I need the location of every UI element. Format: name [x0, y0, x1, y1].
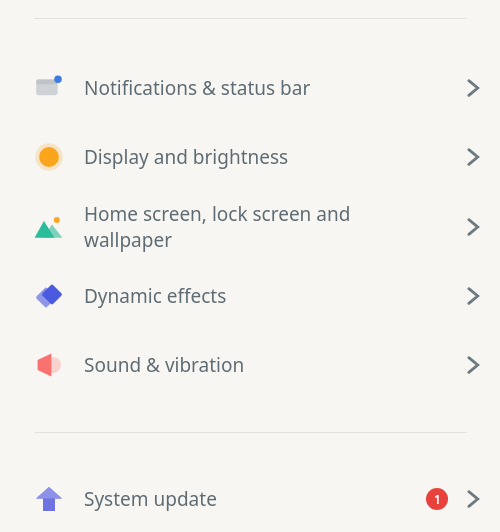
staticText: Sound & vibration: [84, 352, 245, 378]
other: Open System update: [460, 486, 486, 512]
other: Open Display and brightness: [460, 144, 486, 170]
staticText: Dynamic effects: [84, 283, 227, 309]
button[interactable]: Sound & vibration: [0, 330, 500, 400]
button[interactable]: Display and brightness: [0, 122, 500, 192]
staticText: Home screen, lock screen and wallpaper: [84, 201, 351, 253]
staticText: 1: [434, 491, 441, 507]
button[interactable]: Notifications & status bar: [0, 54, 500, 122]
staticText: System update: [84, 486, 217, 512]
staticText: Display and brightness: [84, 144, 289, 170]
button[interactable]: Home screen, lock screen and wallpaper: [0, 192, 500, 262]
other: Open Sound & vibration: [460, 352, 486, 378]
button[interactable]: System update: [0, 465, 500, 532]
other: Open Notifications & status bar: [460, 75, 486, 101]
staticText: Notifications & status bar: [84, 75, 311, 101]
other: Open Dynamic effects: [460, 283, 486, 309]
other: Open Home screen, lock screen and wallpa…: [460, 214, 486, 240]
button[interactable]: Dynamic effects: [0, 262, 500, 330]
